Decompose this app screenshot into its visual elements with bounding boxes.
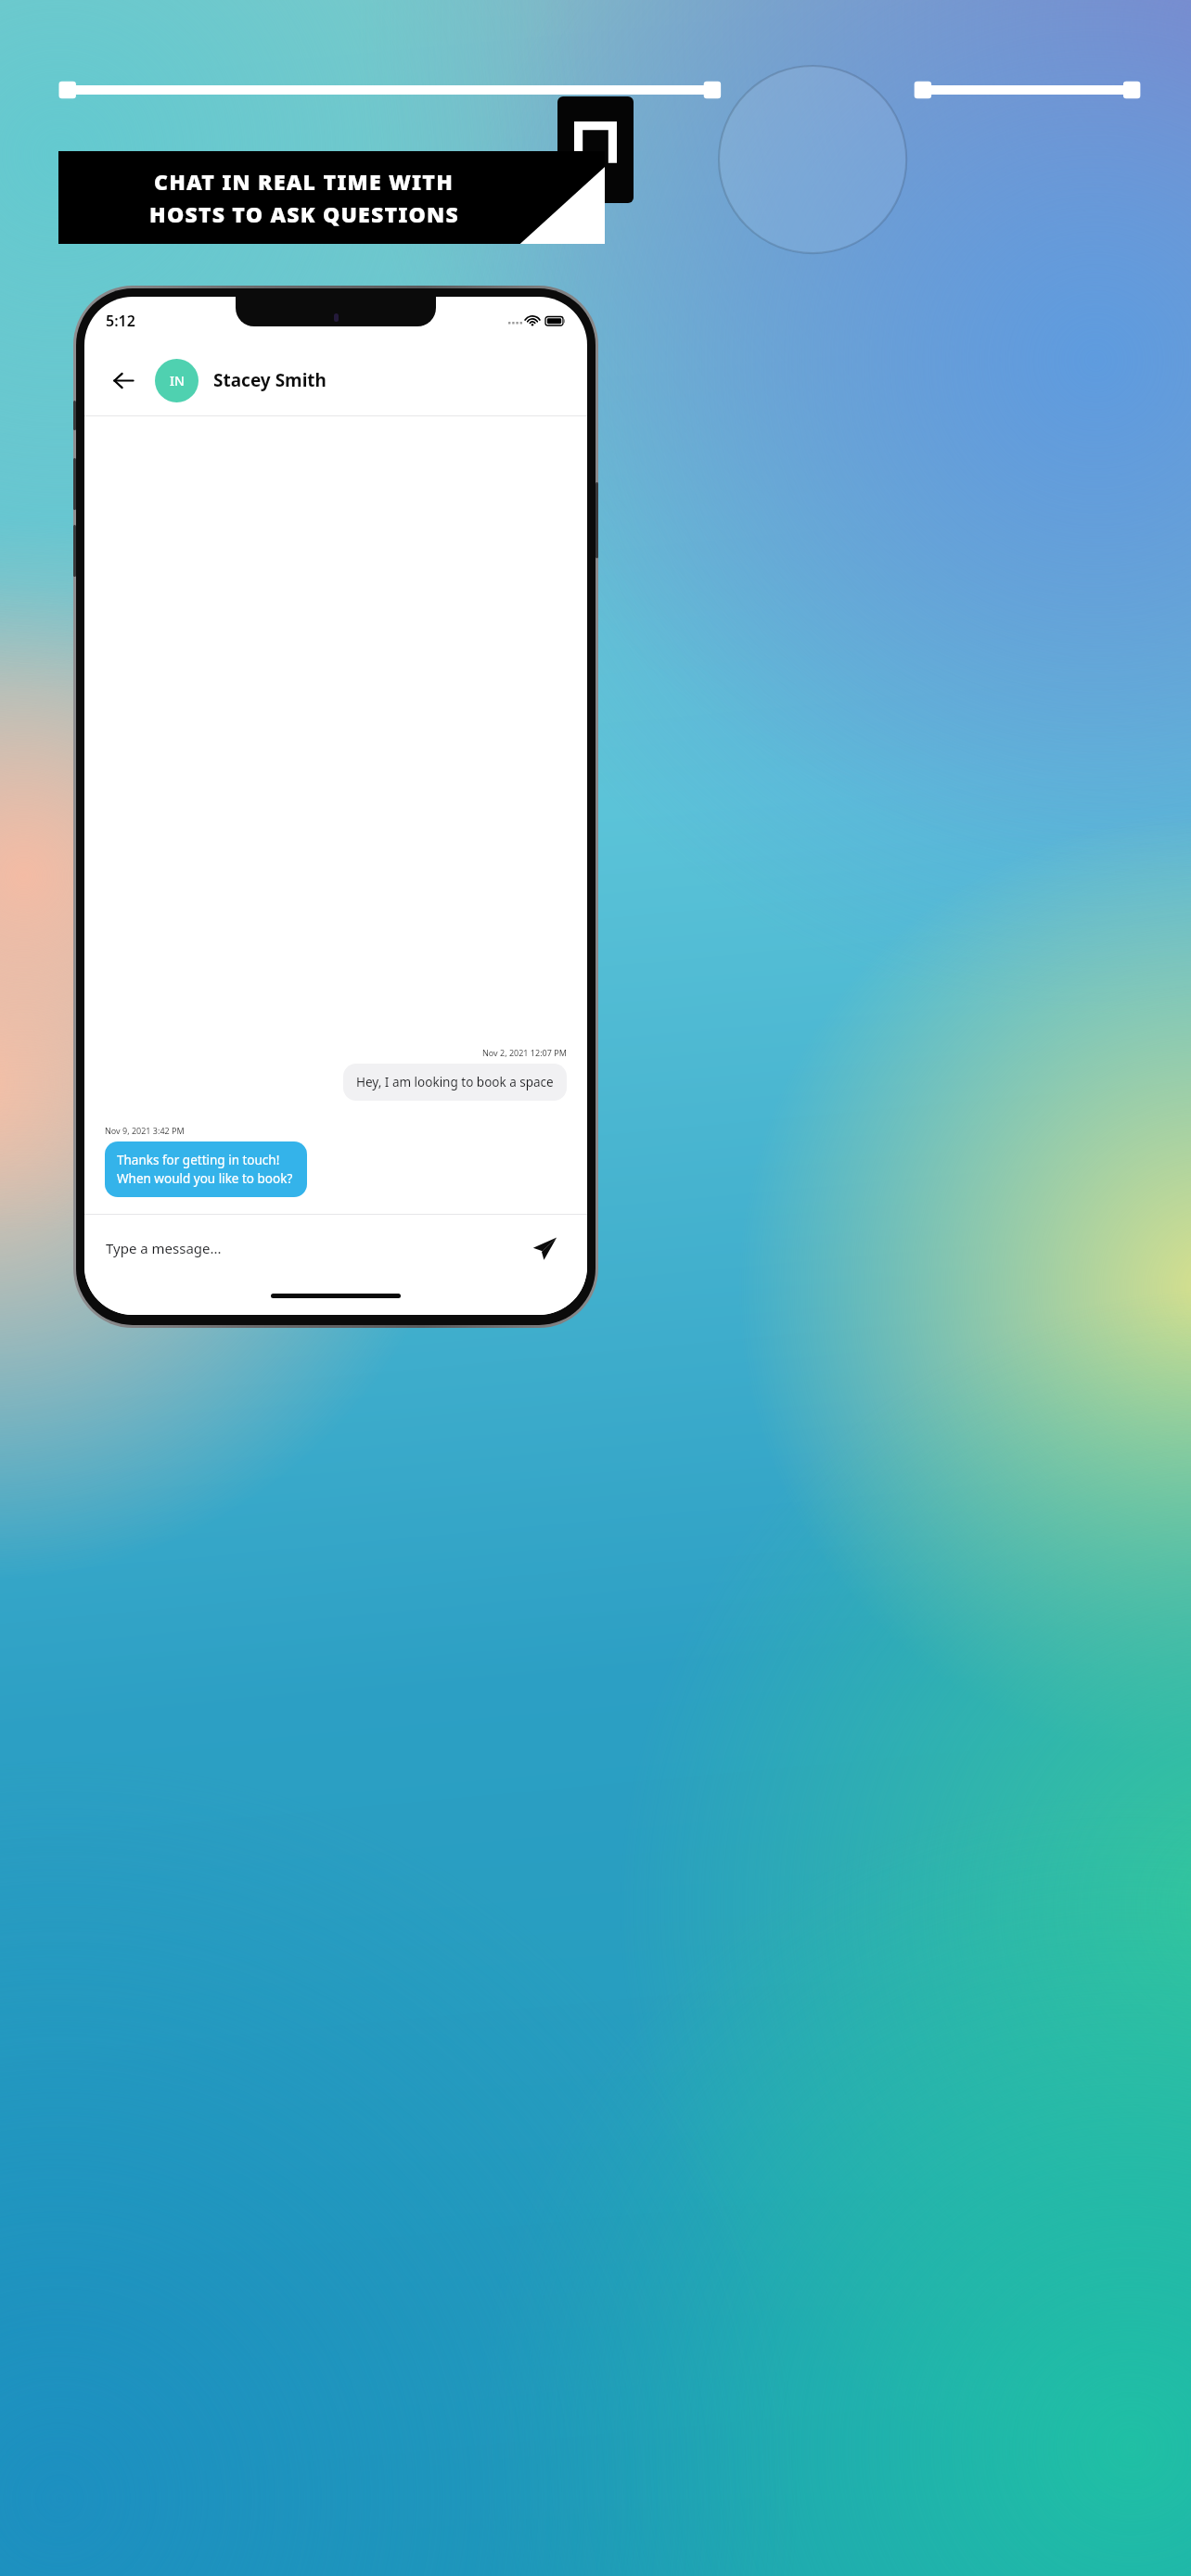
button[interactable]: Send (524, 1228, 565, 1269)
staticText: Nov 9, 2021 3:42 PM (105, 1125, 185, 1136)
staticText: Stacey Smith (213, 368, 327, 392)
button[interactable]: Type a message... (84, 1215, 587, 1282)
staticText: Type a message... (106, 1239, 222, 1257)
staticText: 5:12 (106, 311, 135, 331)
staticText: Thanks for getting in touch! When would … (117, 1152, 295, 1187)
button[interactable]: IN (155, 359, 198, 402)
staticText: CHAT IN REAL TIME WITH (154, 167, 454, 196)
staticText: IN (170, 372, 185, 389)
staticText: Nov 2, 2021 12:07 PM (482, 1047, 567, 1058)
button[interactable]: Thanks for getting in touch! When would … (105, 1141, 307, 1197)
button[interactable]: Hey, I am looking to book a space (343, 1064, 567, 1101)
staticText: Hey, I am looking to book a space (356, 1074, 554, 1090)
button[interactable]: Back (105, 362, 142, 399)
staticText: HOSTS TO ASK QUESTIONS (149, 199, 459, 228)
